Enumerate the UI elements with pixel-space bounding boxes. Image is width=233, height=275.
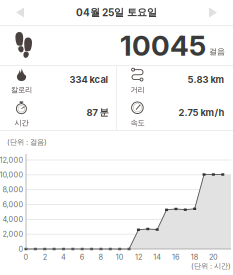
staticText: 16 [172,253,180,261]
staticText: 속도 [130,118,144,127]
staticText: 04월 25일 토요일 [76,6,157,19]
staticText: 12 [135,253,142,261]
staticText: 2.75 km/h [178,107,224,118]
staticText: 334 kcal [69,74,108,85]
staticText: 6 [80,253,85,261]
staticText: 10,000 [0,170,23,179]
staticText: 8,000 [2,185,23,194]
staticText: 시간 [14,118,28,127]
staticText: 18 [191,253,199,261]
staticText: 4,000 [2,215,23,224]
staticText: (단위 : 시간) [191,261,231,271]
staticText: 거리 [130,85,144,94]
staticText: (단위 : 걸음) [7,137,47,147]
staticText: 14 [153,253,161,261]
staticText: 0 [18,245,23,253]
staticText: 칼로리 [11,85,32,94]
button[interactable]: Previous day [0,0,40,25]
staticText: 2 [43,253,47,261]
staticText: 87 분 [86,107,108,118]
staticText: 20 [209,253,218,261]
staticText: 6,000 [2,200,23,209]
staticText: 10045 [120,29,206,62]
staticText: 2,000 [2,230,23,239]
staticText: 4 [61,253,66,261]
button[interactable]: Next day [193,0,233,25]
staticText: 5.83 km [187,74,224,85]
staticText: 10 [116,253,124,261]
staticText: 0 [23,253,28,261]
staticText: 12,000 [0,156,23,164]
staticText: 8 [98,253,103,261]
staticText: 걸음 [209,46,225,56]
